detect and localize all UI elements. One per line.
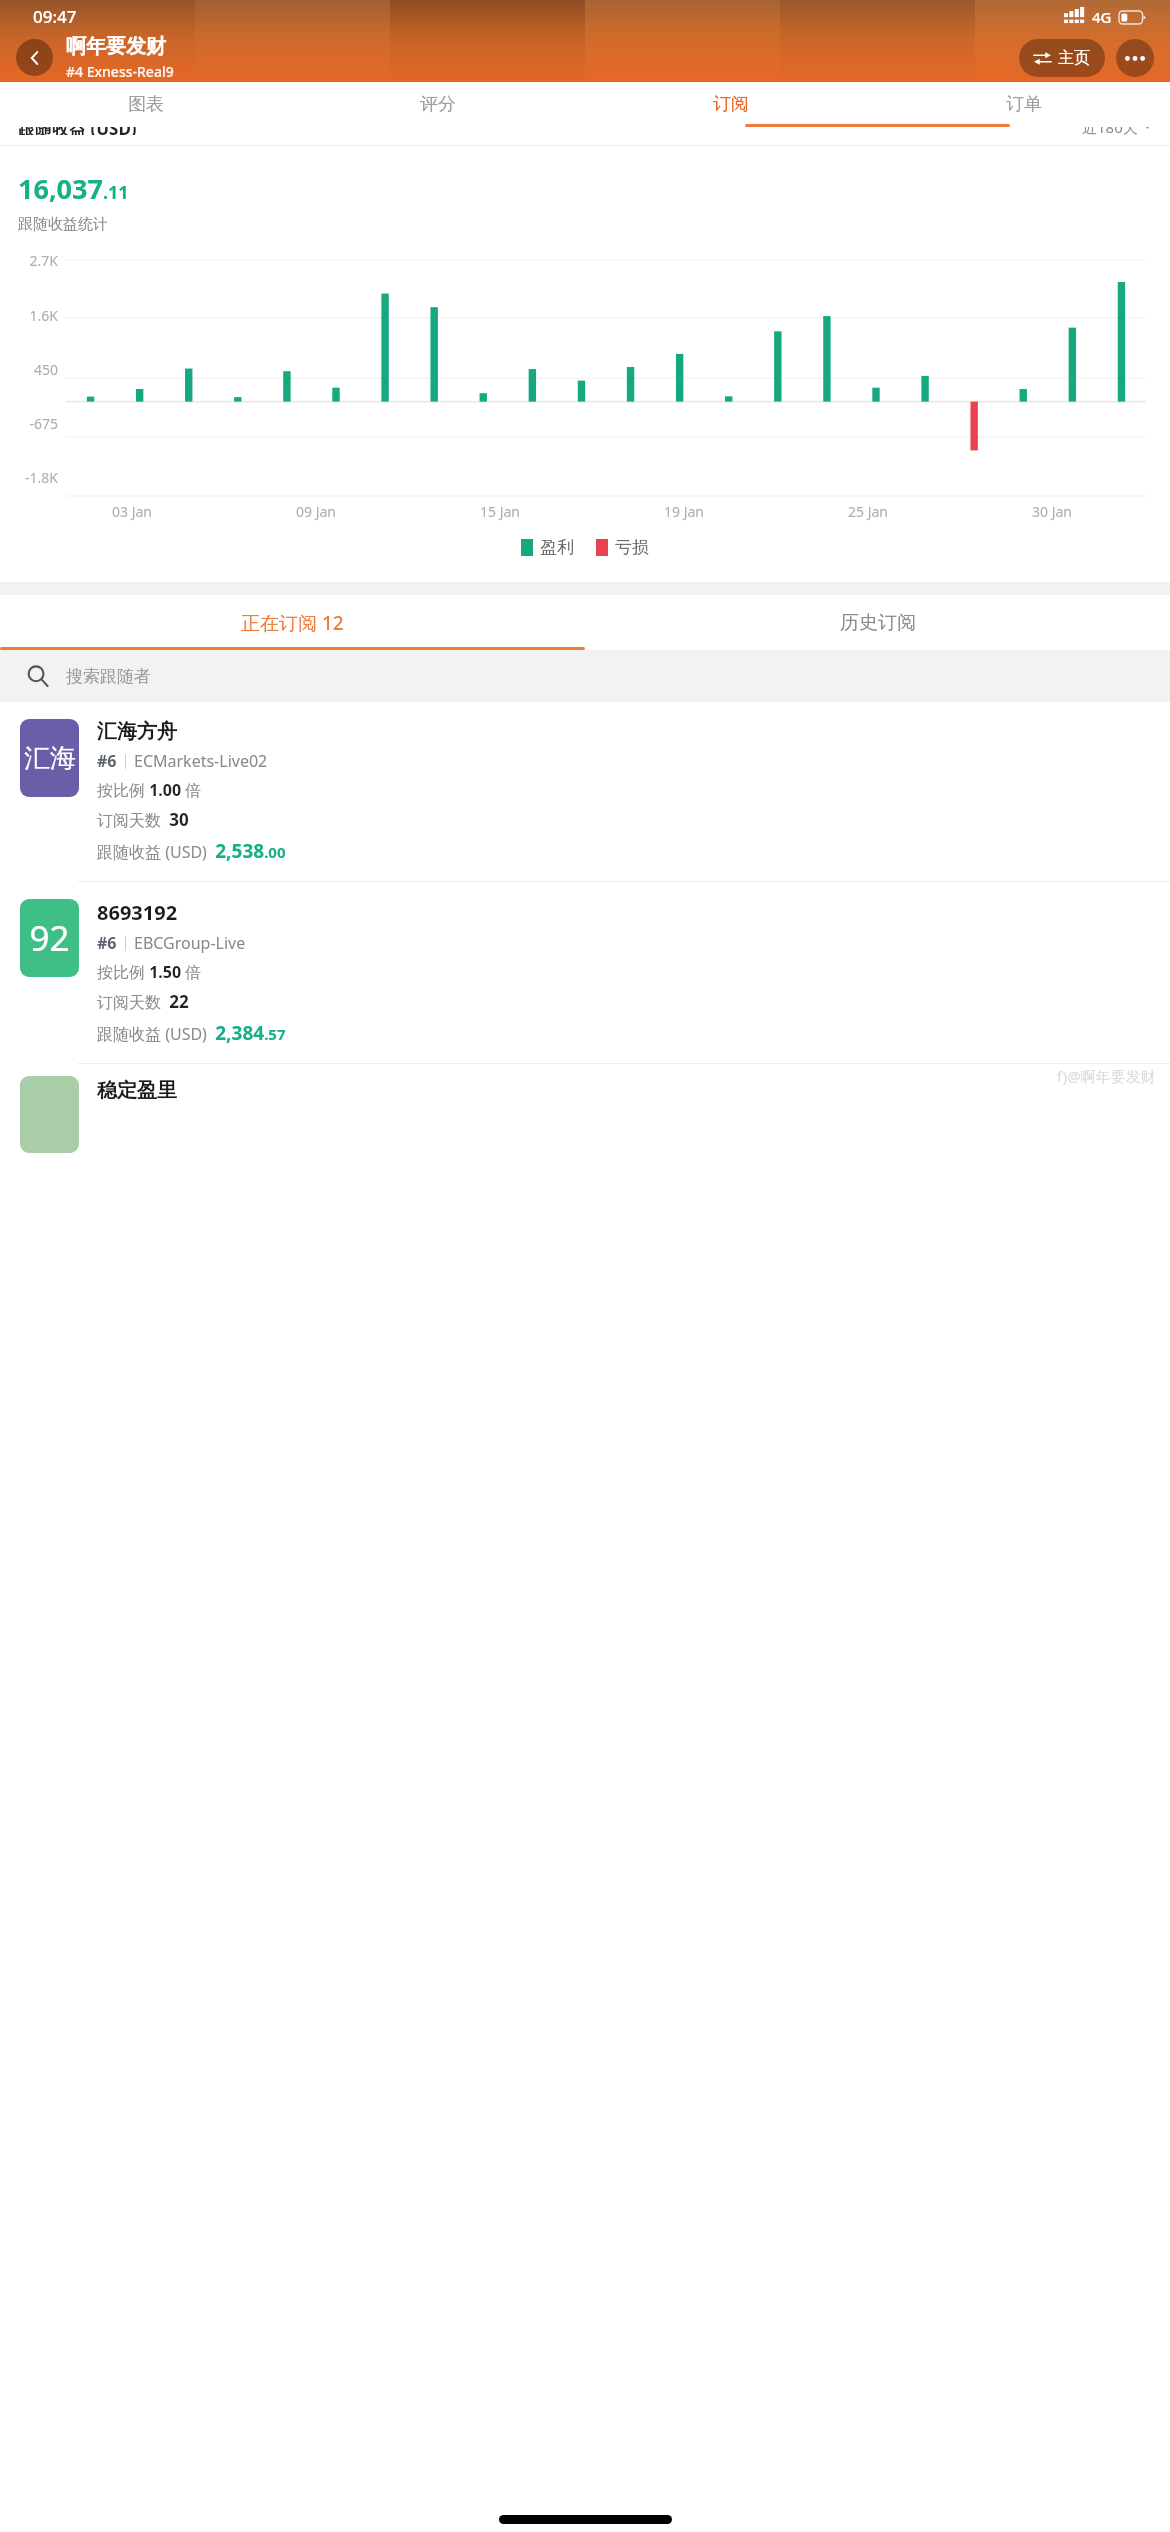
staticText: 亏损 [615, 537, 649, 558]
staticText: -1.8K [0, 468, 58, 487]
staticText: 按比例 1.00 倍 [97, 779, 202, 801]
staticText: 近180天 [1082, 127, 1138, 135]
staticText: f)@啊年要发财 [1057, 1066, 1156, 1086]
staticText: 跟随收益 (USD) 2,384.57 [97, 1020, 286, 1046]
staticText: 稳定盈里 [97, 1078, 177, 1103]
staticText: 15 Jan [480, 502, 520, 521]
button[interactable]: 订单 [877, 82, 1170, 127]
staticText: 啊年要发财 [66, 34, 166, 59]
staticText: 2.7K [0, 251, 58, 270]
staticText: -675 [0, 414, 58, 433]
button[interactable]: 主页 [1019, 39, 1105, 77]
other: Search [26, 664, 50, 688]
button[interactable]: 稳定盈里 [20, 1076, 177, 1153]
staticText: 订单 [1006, 93, 1042, 116]
button[interactable]: 图表 [0, 82, 292, 127]
staticText: 汇海方舟 [97, 719, 177, 744]
button[interactable]: Back [16, 39, 53, 76]
staticText: 03 Jan [112, 502, 152, 521]
staticText: 跟随收益统计 [18, 215, 108, 234]
button[interactable]: More options [1116, 39, 1154, 77]
staticText: 评分 [420, 93, 456, 116]
button[interactable]: 订阅 [584, 82, 877, 127]
staticText: 92 [29, 914, 70, 962]
staticText: 搜索跟随者 [66, 666, 151, 687]
staticText: EBCGroup-Live [134, 932, 246, 954]
staticText: 正在订阅 12 [241, 610, 344, 636]
staticText: 09:47 [33, 5, 77, 28]
staticText: 按比例 1.50 倍 [97, 961, 202, 983]
button[interactable]: 评分 [292, 82, 584, 127]
staticText: 16,037.11 [18, 170, 129, 207]
staticText: 历史订阅 [840, 611, 916, 635]
staticText: 1.6K [0, 306, 58, 325]
staticText: #6 [97, 750, 117, 772]
staticText: 订阅天数 30 [97, 808, 189, 831]
staticText: 盈利 [540, 537, 574, 558]
button[interactable]: 汇海 [0, 702, 1170, 881]
staticText: 订阅天数 22 [97, 990, 189, 1013]
button[interactable]: Search [0, 650, 1170, 702]
staticText: #4 Exness-Real9 [66, 62, 174, 81]
staticText: 4G [1092, 7, 1112, 27]
staticText: 图表 [128, 93, 164, 116]
staticText: #6 [97, 932, 117, 954]
staticText: 订阅 [713, 93, 749, 116]
staticText: 跟随收益 (USD) [18, 127, 137, 135]
staticText: 09 Jan [296, 502, 336, 521]
button[interactable]: 92 [0, 882, 1170, 1063]
button[interactable]: 历史订阅 [585, 595, 1170, 650]
staticText: 25 Jan [848, 502, 888, 521]
button[interactable]: 正在订阅 12 [0, 595, 585, 650]
staticText: 汇海 [24, 742, 76, 775]
staticText: 30 Jan [1032, 502, 1072, 521]
staticText: 主页 [1058, 48, 1090, 68]
staticText: ECMarkets-Live02 [134, 750, 268, 772]
staticText: 8693192 [97, 899, 178, 926]
staticText: 跟随收益 (USD) 2,538.00 [97, 838, 286, 864]
staticText: 450 [0, 360, 58, 379]
staticText: 19 Jan [664, 502, 704, 521]
